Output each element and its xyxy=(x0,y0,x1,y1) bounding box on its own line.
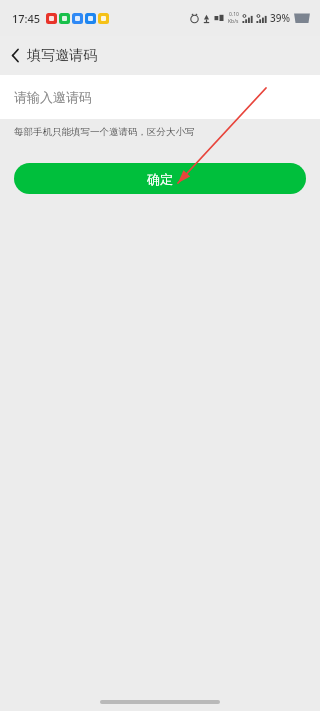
staticText: 填写邀请码 xyxy=(27,47,97,65)
button[interactable]: 请输入邀请码 xyxy=(0,75,320,119)
button[interactable]: 确定 xyxy=(14,163,306,194)
staticText: 每部手机只能填写一个邀请码，区分大小写 xyxy=(14,126,195,138)
staticText: Kb/s xyxy=(228,18,239,25)
staticText: 0.10 xyxy=(229,11,239,18)
staticText: 请输入邀请码 xyxy=(14,89,92,105)
staticText: 17:45 xyxy=(12,11,41,26)
button[interactable]: Back xyxy=(0,36,105,75)
staticText: 39% xyxy=(270,11,290,25)
staticText: 确定 xyxy=(147,171,173,187)
